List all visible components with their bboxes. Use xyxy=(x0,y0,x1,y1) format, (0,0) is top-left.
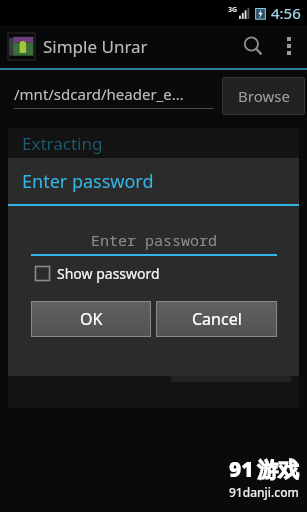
staticText: Cancel xyxy=(192,308,242,330)
staticText: Simple Unrar xyxy=(43,35,148,58)
staticText: 3G xyxy=(228,5,238,15)
button[interactable]: Cancel xyxy=(156,301,277,337)
staticText: Extracting xyxy=(22,132,103,155)
button[interactable]: Show password xyxy=(35,264,160,283)
button[interactable]: /mnt/sdcard/header_e… xyxy=(14,84,214,109)
button[interactable]: Search xyxy=(231,25,275,67)
staticText: OK xyxy=(80,308,103,330)
staticText: Browse xyxy=(238,86,290,106)
staticText: 4:56 xyxy=(271,3,301,23)
staticText: Enter password xyxy=(22,169,154,194)
button[interactable]: Enter password xyxy=(31,230,277,256)
staticText: Show password xyxy=(57,264,160,283)
staticText: Enter password xyxy=(31,230,277,250)
button[interactable]: Browse xyxy=(222,77,305,115)
staticText: 91danji.com xyxy=(229,484,299,500)
button[interactable]: OK xyxy=(31,301,151,337)
staticText: 91 xyxy=(229,455,254,484)
staticText: 游戏 xyxy=(257,457,299,483)
staticText: /mnt/sdcard/header_e… xyxy=(14,84,184,104)
button[interactable]: More options xyxy=(275,25,303,67)
